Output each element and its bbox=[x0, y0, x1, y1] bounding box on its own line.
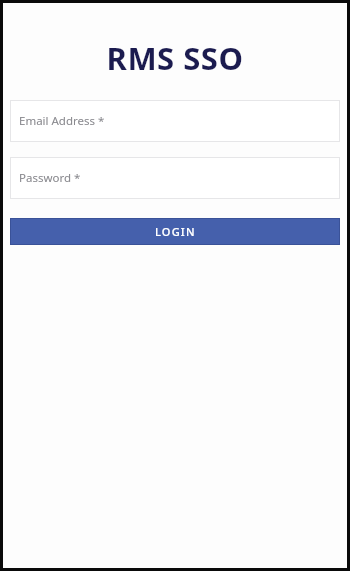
button[interactable]: Password * bbox=[10, 157, 340, 199]
staticText: Password * bbox=[19, 170, 81, 186]
staticText: Email Address * bbox=[19, 113, 105, 129]
staticText: RMS SSO bbox=[3, 37, 347, 79]
button[interactable]: LOGIN bbox=[10, 218, 340, 245]
button[interactable]: Email Address * bbox=[10, 100, 340, 142]
staticText: LOGIN bbox=[155, 224, 196, 239]
